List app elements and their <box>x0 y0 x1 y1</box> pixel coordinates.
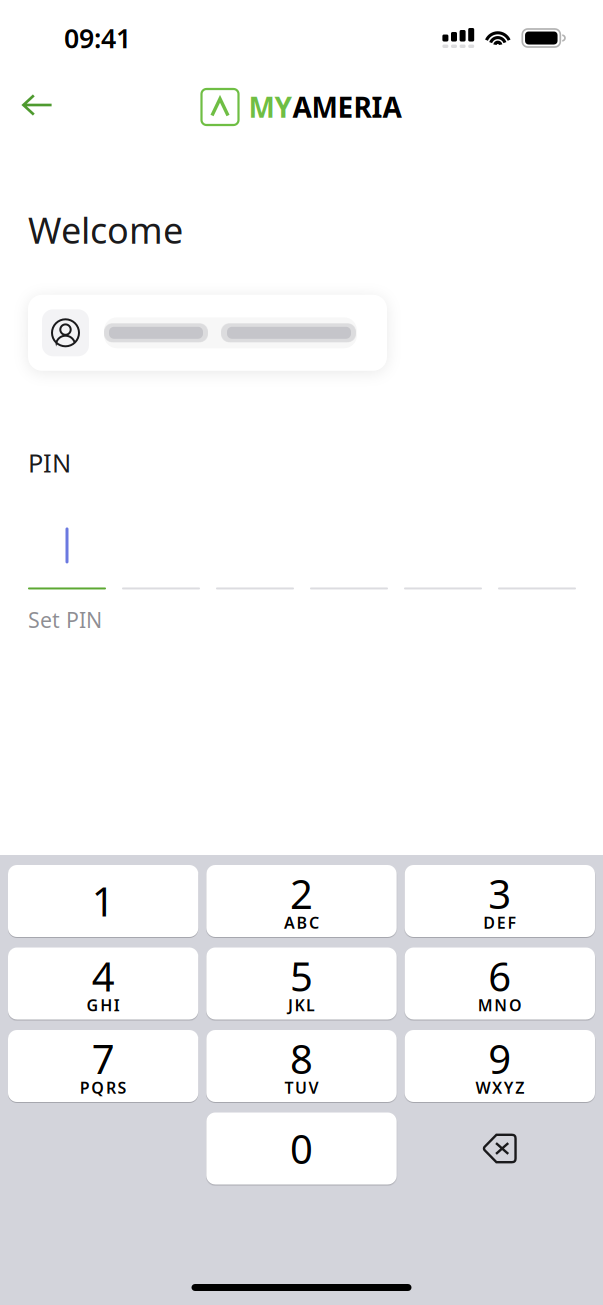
staticText: GHI <box>87 994 120 1016</box>
staticText: AMERIA <box>292 88 401 126</box>
button[interactable]: 9 <box>405 1030 595 1102</box>
staticText: 1 <box>92 874 115 927</box>
button[interactable]: 0 <box>206 1112 397 1184</box>
button[interactable]: 1 <box>8 865 198 937</box>
staticText: MNO <box>478 994 522 1016</box>
staticText: 8 <box>290 1032 313 1085</box>
staticText: 5 <box>290 949 313 1002</box>
staticText: 2 <box>290 867 313 920</box>
staticText: MY <box>248 88 292 126</box>
staticText: PQRS <box>80 1077 127 1098</box>
staticText: 4 <box>92 949 115 1002</box>
staticText: DEF <box>483 912 516 933</box>
staticText: 7 <box>92 1032 115 1085</box>
staticText: 0 <box>290 1122 313 1175</box>
staticText: 3 <box>488 867 511 920</box>
button[interactable]: Delete <box>405 1112 595 1184</box>
staticText: 9 <box>488 1032 511 1085</box>
button[interactable]: 2 <box>206 865 397 937</box>
staticText: JKL <box>288 994 315 1016</box>
button[interactable] <box>28 295 387 371</box>
button[interactable]: Back <box>0 84 69 130</box>
staticText: WXYZ <box>475 1077 524 1098</box>
staticText: ABC <box>284 912 319 933</box>
button[interactable]: 5 <box>206 947 397 1019</box>
button[interactable]: 4 <box>8 947 198 1019</box>
staticText: Set PIN <box>28 605 102 634</box>
button[interactable]: 3 <box>405 865 595 937</box>
button[interactable]: Set PIN <box>28 601 102 638</box>
staticText: PIN <box>28 446 71 479</box>
staticText: Welcome <box>28 206 183 254</box>
staticText: 09:41 <box>64 20 131 56</box>
staticText: 6 <box>488 949 511 1002</box>
staticText: TUV <box>284 1077 319 1098</box>
button[interactable]: 7 <box>8 1030 198 1102</box>
button[interactable]: 6 <box>405 947 595 1019</box>
button[interactable]: 8 <box>206 1030 397 1102</box>
